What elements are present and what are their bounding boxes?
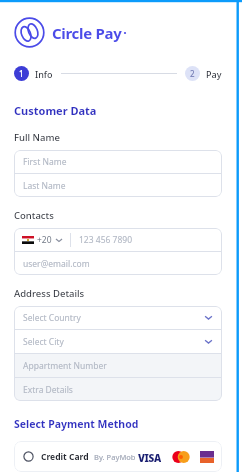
staticText: Address Details	[14, 287, 85, 300]
staticText: Full Name	[14, 131, 60, 144]
button[interactable]: Select Country	[14, 306, 222, 329]
staticText: Select Country	[23, 312, 81, 324]
staticText: First Name	[23, 156, 67, 168]
staticText: Circle Pay	[52, 23, 122, 43]
staticText: Pay	[206, 68, 222, 80]
button[interactable]: Select City	[14, 330, 222, 353]
staticText: Last Name	[23, 180, 66, 192]
staticText: 2	[190, 68, 195, 79]
staticText: 123 456 7890	[79, 234, 133, 246]
staticText: Contacts	[14, 209, 54, 222]
staticText: +20	[37, 234, 52, 246]
staticText: user@email.com	[23, 258, 90, 270]
button[interactable]: First Name	[14, 150, 222, 173]
staticText: By. PayMob	[94, 452, 136, 462]
button[interactable]: Last Name	[14, 174, 222, 197]
button[interactable]: Appartment Number	[14, 354, 222, 377]
staticText: 1	[19, 68, 24, 79]
staticText: VISA	[138, 451, 161, 463]
button[interactable]: Credit Card	[14, 441, 222, 472]
staticText: Customer Data	[14, 103, 97, 118]
staticText: Select City	[23, 336, 64, 348]
button[interactable]: Select country code	[14, 234, 70, 246]
staticText: Appartment Number	[23, 360, 107, 372]
staticText: Extra Details	[23, 384, 73, 396]
button[interactable]: user@email.com	[14, 252, 222, 275]
staticText: Credit Card	[41, 451, 89, 463]
button[interactable]: Extra Details	[14, 378, 222, 401]
staticText: Select Payment Method	[14, 417, 139, 431]
staticText: Info	[35, 68, 53, 80]
